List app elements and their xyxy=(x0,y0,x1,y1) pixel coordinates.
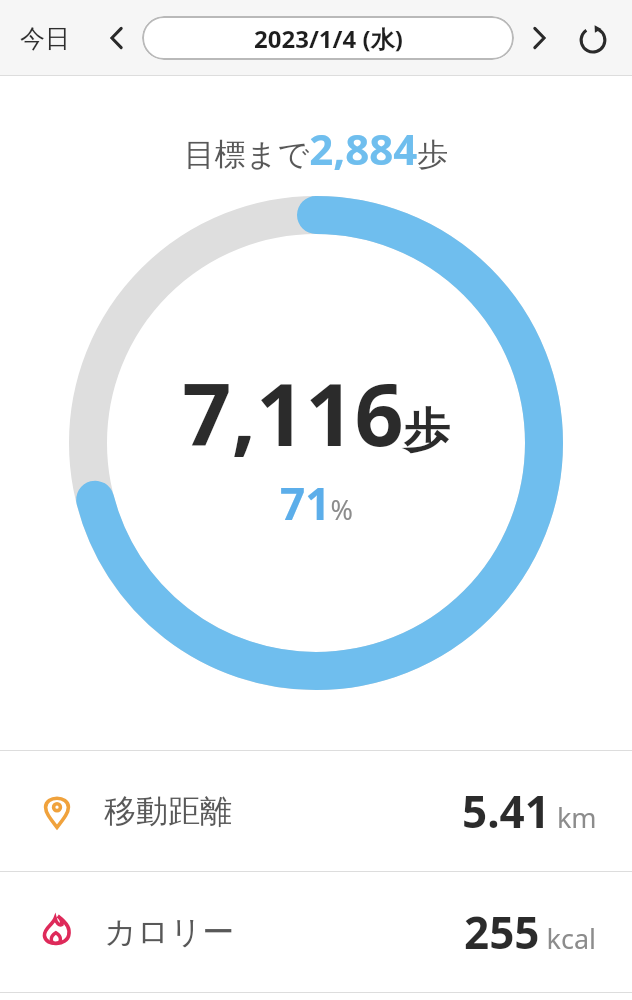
staticText: カロリー xyxy=(104,912,235,952)
button[interactable]: 今日 xyxy=(12,17,78,60)
staticText: 2023/1/4 (水) xyxy=(254,22,403,55)
button[interactable]: 次の日 xyxy=(516,15,562,61)
button[interactable]: 移動距離 xyxy=(0,751,632,871)
staticText: 7,116歩 xyxy=(182,354,450,471)
staticText: 255 kcal xyxy=(464,902,597,962)
button[interactable]: 前の日 xyxy=(94,15,140,61)
staticText: 5.41 km xyxy=(462,781,597,841)
staticText: 今日 xyxy=(20,23,70,54)
staticText: 移動距離 xyxy=(104,791,232,831)
button[interactable]: カロリー xyxy=(0,872,632,992)
staticText: 71% xyxy=(280,473,353,533)
staticText: 目標まで2,884歩 xyxy=(0,120,632,177)
button[interactable]: 2023/1/4 (水) xyxy=(142,16,514,60)
button[interactable]: 更新 xyxy=(568,13,618,63)
